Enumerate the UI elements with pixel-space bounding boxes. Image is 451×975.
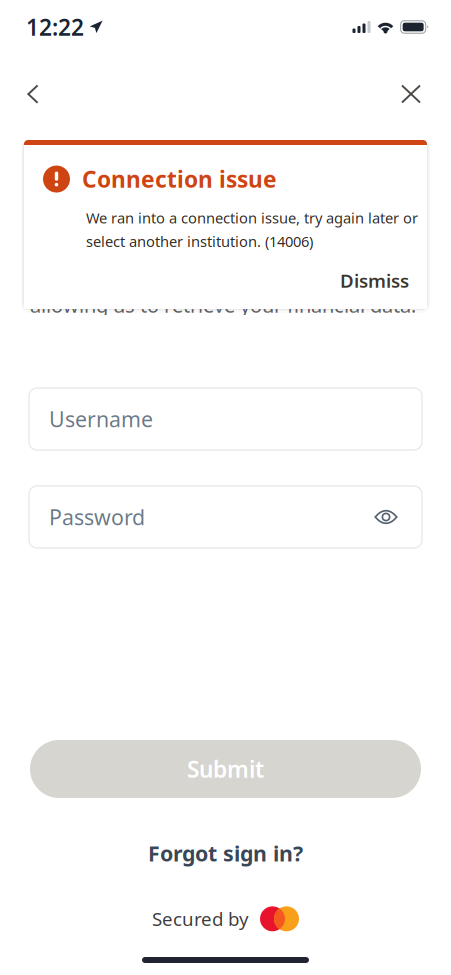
button[interactable]: Back xyxy=(11,72,55,116)
staticText: 12:22 xyxy=(26,12,84,42)
button[interactable]: Show password xyxy=(370,505,402,529)
staticText: Submit xyxy=(187,754,264,784)
staticText: Forgot sign in? xyxy=(148,839,303,867)
button[interactable]: Username xyxy=(29,388,422,450)
staticText: Username xyxy=(49,405,153,433)
staticText: Secured by xyxy=(152,906,249,931)
button[interactable]: Submit xyxy=(30,740,421,798)
staticText: We ran into a connection issue, try agai… xyxy=(86,208,418,228)
button[interactable]: Close xyxy=(389,72,433,116)
staticText: Connection issue xyxy=(82,164,277,194)
button[interactable]: Dismiss xyxy=(332,263,417,298)
staticText: Password xyxy=(49,503,145,531)
staticText: select another institution. (14006) xyxy=(86,232,313,251)
staticText: allowing us to retrieve your financial d… xyxy=(30,292,416,318)
button[interactable]: Forgot sign in? xyxy=(136,832,315,874)
staticText: Dismiss xyxy=(340,268,409,293)
button[interactable]: Password xyxy=(29,486,422,548)
